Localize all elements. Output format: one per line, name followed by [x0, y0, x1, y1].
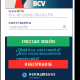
staticText: contraseña: [9, 24, 28, 29]
button[interactable]: ¿Olvidó su contraseña?: [7, 47, 69, 52]
staticText: usuario: [9, 8, 24, 13]
button[interactable]: ¿Aún no se encuentra registrado?: [7, 53, 69, 58]
staticText: BERAZATEGUI: [28, 71, 55, 77]
staticText: BANCO MUNICIPAL: [28, 77, 40, 79]
staticText: BCV: [33, 0, 46, 8]
staticText: REGISTRARSE: [25, 61, 52, 67]
button[interactable]: INICIAR SESIÓN: [7, 36, 69, 46]
staticText: ¿Olvidó su contraseña?: [16, 47, 61, 52]
staticText: contraseña: [9, 20, 31, 25]
staticText: nro. de celular (0srd o 15): [9, 12, 53, 17]
staticText: ¿Aún no se encuentra registrado?: [16, 50, 60, 61]
staticText: INICIAR SESIÓN: [22, 39, 55, 44]
button[interactable]: REGISTRARSE: [8, 60, 68, 68]
